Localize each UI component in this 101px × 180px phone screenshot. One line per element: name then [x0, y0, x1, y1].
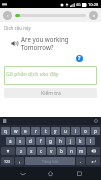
button[interactable]: j	[66, 137, 75, 145]
button[interactable]: o	[81, 127, 90, 135]
button[interactable]: g	[46, 137, 55, 145]
staticText: 123	[4, 159, 11, 164]
staticText: m	[79, 148, 84, 154]
button[interactable]: Back	[16, 167, 29, 180]
button[interactable]: k	[76, 137, 85, 145]
staticText: z	[20, 148, 23, 154]
button[interactable]: Kiểm tra	[4, 88, 97, 98]
staticText: y	[54, 128, 57, 134]
button[interactable]: Enter	[86, 157, 100, 165]
button[interactable]: 123	[1, 157, 14, 165]
staticText: j	[70, 138, 72, 144]
staticText: Kiểm tra	[41, 90, 61, 97]
button[interactable]: a	[6, 137, 15, 145]
button[interactable]: Shift	[1, 147, 15, 155]
button[interactable]: Recent apps	[73, 167, 86, 180]
staticText: t	[45, 128, 47, 134]
button[interactable]: y	[51, 127, 60, 135]
button[interactable]: u	[61, 127, 70, 135]
button[interactable]: i	[71, 127, 80, 135]
staticText: Tiếng Việt	[42, 159, 59, 164]
staticText: Are you working Tomorrow?	[21, 35, 97, 51]
button[interactable]: z	[16, 147, 26, 155]
staticText: l	[90, 138, 92, 144]
staticText: k	[79, 138, 82, 144]
button[interactable]: Gõ phần dịch vào đây	[4, 66, 97, 85]
button[interactable]: m	[77, 147, 86, 155]
staticText: r	[35, 128, 37, 134]
staticText: x	[30, 148, 33, 154]
staticText: ?	[78, 55, 81, 62]
button[interactable]: n	[67, 147, 76, 155]
button[interactable]: Close	[89, 11, 98, 20]
button[interactable]: x	[27, 147, 36, 155]
staticText: c	[40, 148, 43, 154]
button[interactable]: .	[76, 157, 85, 165]
button[interactable]: b	[57, 147, 66, 155]
staticText: f	[40, 138, 42, 144]
button[interactable]: p	[91, 127, 100, 135]
button[interactable]: Keyboard settings	[94, 119, 98, 123]
button[interactable]: Space	[25, 157, 75, 165]
button[interactable]: h	[56, 137, 65, 145]
button[interactable]: e	[21, 127, 30, 135]
staticText: d	[29, 138, 32, 144]
staticText: q	[4, 128, 7, 134]
button[interactable]: r	[31, 127, 40, 135]
staticText: i	[75, 128, 77, 134]
staticText: w	[14, 128, 18, 134]
staticText: Dịch câu này	[4, 25, 31, 31]
button[interactable]: f	[36, 137, 45, 145]
button[interactable]: q	[1, 127, 10, 135]
staticText: s	[19, 138, 22, 144]
staticText: p	[94, 128, 97, 134]
staticText: n	[70, 148, 73, 154]
staticText: h	[59, 138, 62, 144]
button[interactable]: v	[47, 147, 56, 155]
staticText: b	[60, 148, 63, 154]
staticText: a	[9, 138, 12, 144]
button[interactable]: Play audio	[10, 39, 18, 47]
button[interactable]: w	[11, 127, 20, 135]
button[interactable]: l	[86, 137, 95, 145]
staticText: .	[80, 158, 82, 164]
staticText: ,	[19, 158, 21, 164]
button[interactable]: Home	[44, 167, 57, 180]
button[interactable]: Back	[3, 11, 12, 20]
staticText: e	[24, 128, 27, 134]
staticText: 4G	[76, 2, 81, 7]
button[interactable]: Backspace	[87, 147, 100, 155]
staticText: u	[64, 128, 67, 134]
button[interactable]: s	[16, 137, 25, 145]
staticText: 10:28	[88, 2, 99, 7]
button[interactable]: c	[37, 147, 46, 155]
staticText: v	[50, 148, 53, 154]
staticText: g	[49, 138, 52, 144]
staticText: o	[84, 128, 87, 134]
button[interactable]: Hint	[76, 55, 83, 62]
button[interactable]: t	[41, 127, 50, 135]
button[interactable]: d	[26, 137, 35, 145]
button[interactable]: ,	[15, 157, 24, 165]
staticText: Gõ phần dịch vào đây	[6, 70, 59, 77]
